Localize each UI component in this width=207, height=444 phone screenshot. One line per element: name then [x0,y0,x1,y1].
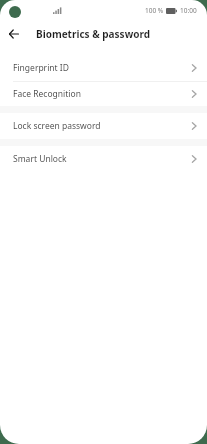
button[interactable]: Fingerprint ID [0,55,207,81]
staticText: 10:00 [180,6,197,15]
staticText: Face Recognition [13,88,81,100]
staticText: 100 % [145,6,164,15]
button[interactable] [0,20,28,48]
staticText: Fingerprint ID [13,62,69,74]
button[interactable]: Face Recognition [0,82,207,106]
staticText: Smart Unlock [13,153,67,165]
staticText: Lock screen password [13,120,101,132]
button[interactable]: Smart Unlock [0,146,207,172]
button[interactable]: Lock screen password [0,113,207,139]
staticText: Biometrics & password [36,27,151,41]
